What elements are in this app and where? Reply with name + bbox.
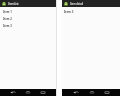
- button[interactable]: Recents: [35, 89, 50, 96]
- staticText: Item detail: [70, 2, 84, 5]
- button[interactable]: Home: [20, 89, 35, 96]
- staticText: Item 3: [64, 10, 74, 14]
- button[interactable]: Back: [6, 89, 20, 96]
- staticText: Item 3: [3, 24, 12, 28]
- button[interactable]: Item 3: [0, 22, 56, 29]
- staticText: Item 1: [3, 10, 12, 14]
- button[interactable]: Item 1: [0, 8, 56, 15]
- staticText: ItemList: [8, 2, 19, 6]
- staticText: Item 2: [3, 17, 12, 21]
- button[interactable]: Recents: [99, 89, 114, 96]
- button[interactable]: Home: [84, 89, 99, 96]
- button[interactable]: Item 2: [0, 15, 56, 22]
- button[interactable]: Back: [68, 89, 84, 96]
